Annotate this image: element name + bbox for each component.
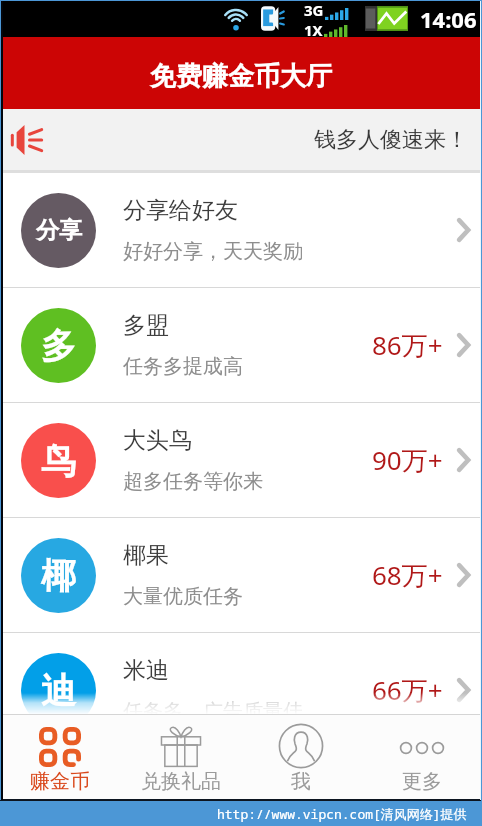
button[interactable]: 椰: [0, 518, 482, 632]
staticText: 68万+: [372, 557, 443, 593]
staticText: 3G: [304, 0, 324, 20]
staticText: 好好分享，天天奖励: [123, 239, 303, 264]
staticText: 超多任务等你来: [123, 469, 263, 494]
staticText: 66万+: [372, 672, 443, 708]
button[interactable]: 多: [0, 288, 482, 402]
staticText: 1X: [304, 20, 323, 37]
staticText: 兑换礼品: [141, 769, 221, 794]
staticText: 任务多，广告质量佳: [123, 699, 303, 724]
staticText: 迪: [41, 669, 76, 713]
staticText: 分享: [36, 216, 82, 245]
other: Announcement: [11, 124, 44, 155]
button[interactable]: 更多: [362, 715, 482, 799]
staticText: 钱多人傻速来！: [314, 126, 468, 154]
staticText: 鸟: [41, 439, 76, 483]
staticText: 更多: [402, 769, 442, 794]
staticText: 多盟: [123, 311, 169, 340]
staticText: 我: [291, 769, 311, 794]
staticText: 赚金币: [30, 769, 90, 794]
staticText: 14:06: [420, 4, 477, 34]
staticText: 90万+: [372, 442, 443, 478]
staticText: 任务多提成高: [123, 354, 243, 379]
button[interactable]: 赚金币: [0, 715, 120, 799]
button[interactable]: 分享: [0, 173, 482, 287]
staticText: 大量优质任务: [123, 584, 243, 609]
staticText: 大头鸟: [123, 426, 192, 455]
staticText: 椰果: [123, 541, 169, 570]
button[interactable]: Announcement: [0, 109, 482, 170]
staticText: 分享给好友: [123, 196, 238, 225]
staticText: 米迪: [123, 656, 169, 685]
staticText: 免费赚金币大厅: [150, 60, 332, 93]
button[interactable]: 我: [241, 715, 361, 799]
staticText: 86万+: [372, 327, 443, 363]
staticText: 多: [41, 324, 76, 368]
staticText: http://www.vipcn.com[清风网络]提供: [217, 805, 467, 823]
staticText: 椰: [41, 554, 76, 598]
button[interactable]: 兑换礼品: [121, 715, 241, 799]
button[interactable]: 鸟: [0, 403, 482, 517]
button[interactable]: 迪: [0, 633, 482, 747]
